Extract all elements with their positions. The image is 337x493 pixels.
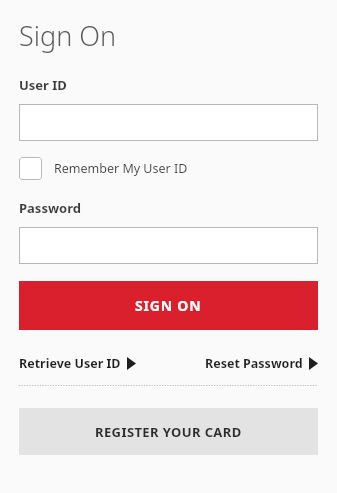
staticText: Retrieve User ID [19,355,121,372]
staticText: User ID [19,76,67,94]
button[interactable] [19,227,318,264]
staticText: SIGN ON [135,296,202,315]
staticText: Password [19,199,81,217]
button[interactable] [19,104,318,141]
button[interactable]: SIGN ON [19,281,318,330]
button[interactable]: Remember My User ID [19,157,188,180]
staticText: REGISTER YOUR CARD [95,423,242,441]
button[interactable]: REGISTER YOUR CARD [19,408,318,455]
other: Go [309,357,318,370]
other: Go [127,357,136,370]
staticText: Remember My User ID [54,160,188,177]
button[interactable]: Reset Password [205,355,318,372]
button[interactable]: Retrieve User ID [19,355,136,372]
staticText: Sign On [19,17,117,54]
staticText: Reset Password [205,355,303,372]
